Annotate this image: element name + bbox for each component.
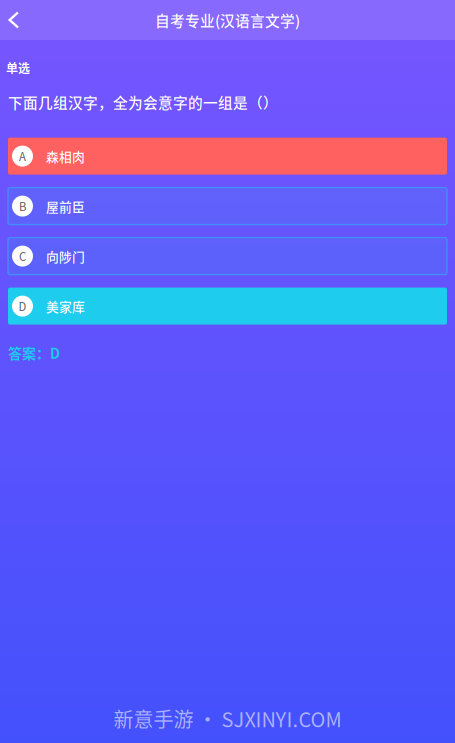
staticText: 单选 (6, 59, 30, 76)
staticText: D (18, 298, 26, 314)
button[interactable]: A (8, 138, 447, 175)
button[interactable]: B (8, 188, 447, 225)
staticText: 屋前臣 (46, 197, 85, 215)
staticText: 下面几组汉字，全为会意字的一组是（） (8, 91, 278, 113)
staticText: A (19, 148, 26, 164)
staticText: 答案：D (8, 343, 60, 363)
staticText: B (19, 198, 26, 214)
staticText: 美家库 (46, 297, 85, 315)
staticText: 森相肉 (46, 147, 85, 165)
staticText: 向陟门 (46, 247, 85, 265)
staticText: 自考专业(汉语言文学) (155, 9, 300, 31)
staticText: 新意手游 • SJXINYI.COM (113, 704, 341, 733)
button[interactable]: D (8, 288, 447, 325)
staticText: C (19, 248, 26, 264)
button[interactable]: Back (0, 0, 35, 40)
button[interactable]: C (8, 238, 447, 275)
